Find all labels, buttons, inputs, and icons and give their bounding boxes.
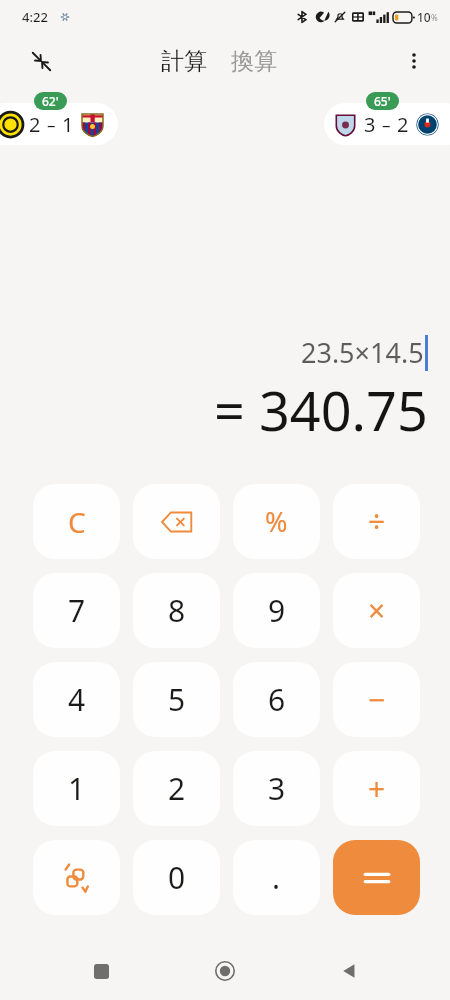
button[interactable]: . — [233, 840, 320, 915]
button[interactable]: 換算 — [227, 45, 281, 78]
staticText: % — [431, 12, 438, 23]
button[interactable]: 7 — [33, 573, 120, 648]
staticText: C — [68, 503, 86, 541]
staticText: 4:22 — [22, 8, 48, 26]
staticText: 3 — [268, 768, 286, 809]
staticText: % — [265, 503, 288, 540]
button[interactable]: Scientific mode — [33, 840, 120, 915]
button[interactable]: Collapse — [22, 42, 60, 80]
staticText: 2 — [29, 111, 41, 138]
button[interactable]: − — [333, 662, 420, 737]
staticText: 23.5×14.5 — [301, 334, 424, 371]
staticText: 0 — [168, 857, 186, 898]
button[interactable]: 計算 — [157, 45, 211, 78]
staticText: 換算 — [231, 47, 277, 76]
button[interactable]: More options — [396, 43, 432, 79]
staticText: 9 — [268, 590, 286, 631]
staticText: × — [368, 590, 386, 631]
button[interactable]: 8 — [133, 573, 220, 648]
button[interactable] — [333, 840, 420, 915]
button[interactable]: 2 — [0, 103, 118, 145]
button[interactable]: Back — [326, 948, 372, 994]
button[interactable]: % — [233, 484, 320, 559]
staticText: 2 — [397, 111, 409, 138]
staticText: = 340.75 — [214, 373, 428, 447]
staticText: − — [368, 679, 386, 720]
button[interactable]: 6 — [233, 662, 320, 737]
button[interactable]: Recents — [78, 948, 124, 994]
staticText: 1 — [68, 768, 86, 809]
button[interactable]: 5 — [133, 662, 220, 737]
staticText: + — [368, 768, 386, 809]
button[interactable]: 1 — [33, 751, 120, 826]
button[interactable]: 0 — [133, 840, 220, 915]
button[interactable]: 9 — [233, 573, 320, 648]
staticText: 10 — [417, 9, 431, 25]
button[interactable]: ÷ — [333, 484, 420, 559]
staticText: 7 — [68, 590, 86, 631]
button[interactable]: + — [333, 751, 420, 826]
staticText: 62' — [42, 93, 59, 109]
button[interactable]: C — [33, 484, 120, 559]
staticText: ÷ — [368, 501, 386, 542]
staticText: 65' — [374, 93, 391, 109]
button[interactable]: Delete — [133, 484, 220, 559]
button[interactable]: 3 — [324, 103, 450, 145]
staticText: 2 — [168, 768, 186, 809]
staticText: 3 — [364, 111, 376, 138]
staticText: . — [272, 857, 281, 898]
staticText: – — [47, 113, 56, 136]
button[interactable]: × — [333, 573, 420, 648]
staticText: 5 — [168, 679, 186, 720]
staticText: 8 — [168, 590, 186, 631]
button[interactable]: Home — [202, 948, 248, 994]
button[interactable]: 3 — [233, 751, 320, 826]
staticText: 6 — [268, 679, 286, 720]
staticText: – — [382, 113, 391, 136]
button[interactable]: 2 — [133, 751, 220, 826]
staticText: 計算 — [161, 47, 207, 76]
staticText: 4 — [68, 679, 86, 720]
button[interactable]: 4 — [33, 662, 120, 737]
staticText: 1 — [62, 111, 74, 138]
